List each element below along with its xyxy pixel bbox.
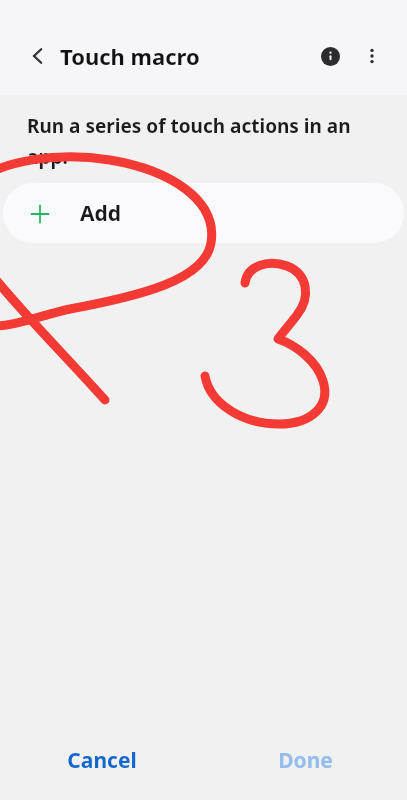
- button[interactable]: Done: [203, 720, 407, 800]
- staticText: Touch macro: [60, 41, 200, 71]
- button[interactable]: Information: [310, 36, 350, 76]
- staticText: Add: [80, 199, 122, 228]
- staticText: Cancel: [67, 746, 137, 775]
- button[interactable]: More options: [352, 36, 392, 76]
- button[interactable]: Add: [3, 183, 404, 243]
- button[interactable]: Cancel: [0, 720, 203, 800]
- staticText: Run a series of touch actions in an app.: [27, 113, 385, 169]
- staticText: Done: [278, 746, 333, 775]
- button[interactable]: Back: [16, 34, 60, 78]
